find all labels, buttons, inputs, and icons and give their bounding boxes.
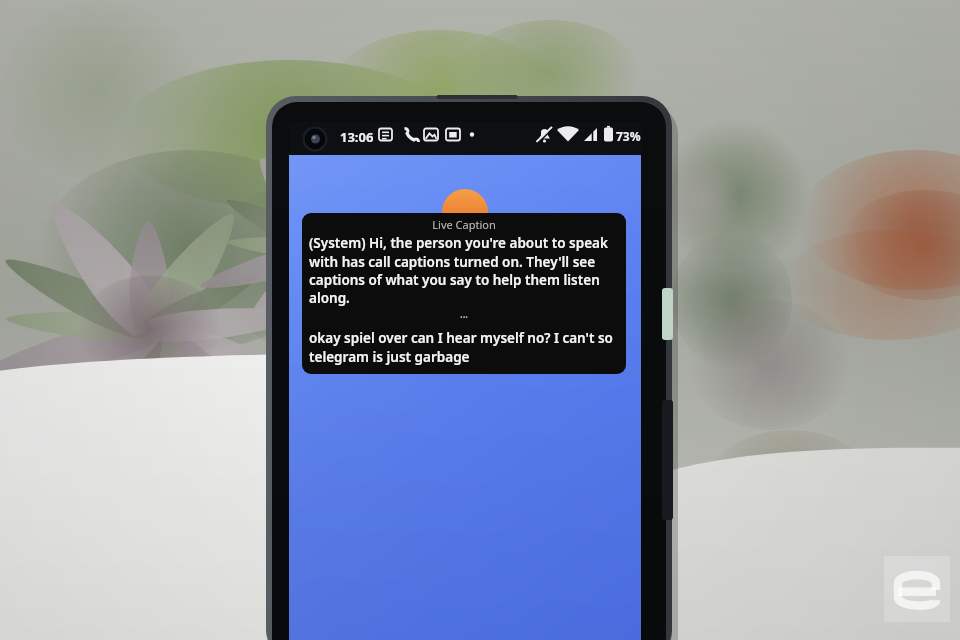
button[interactable]: Live Caption transcript (302, 213, 626, 374)
staticText: 13:06 (340, 128, 374, 146)
staticText: okay spiel over can I hear myself no? I … (309, 329, 619, 365)
staticText: 73% (616, 128, 641, 144)
staticText: ••• (309, 313, 619, 323)
staticText: Live Caption (309, 217, 619, 232)
button[interactable]: 13:06 (340, 128, 374, 146)
staticText: (System) Hi, the person you're about to … (309, 234, 619, 306)
